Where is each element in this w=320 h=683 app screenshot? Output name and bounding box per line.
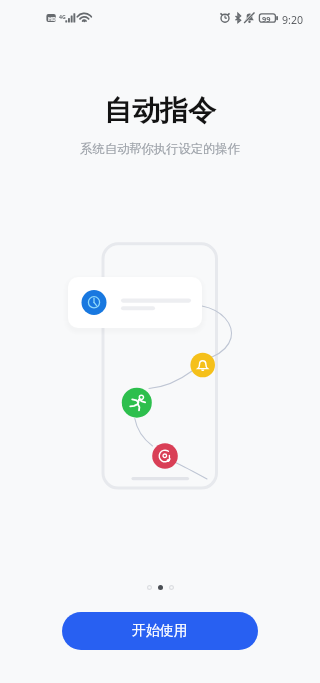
- staticText: HD: [48, 15, 57, 22]
- staticText: 9:20: [282, 13, 304, 27]
- staticText: 自动指令: [0, 93, 320, 128]
- staticText: 4G: [59, 13, 66, 20]
- staticText: 开始使用: [132, 622, 188, 640]
- staticText: 系统自动帮你执行设定的操作: [0, 141, 320, 156]
- staticText: 99: [262, 14, 271, 24]
- button[interactable]: 开始使用: [62, 612, 258, 650]
